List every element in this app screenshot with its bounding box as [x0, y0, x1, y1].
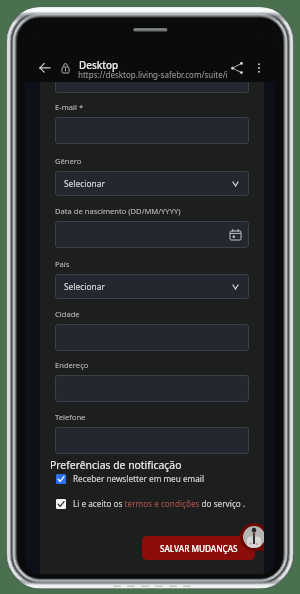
button[interactable]: Receber newsletter em meu email [56, 473, 205, 484]
button[interactable] [55, 375, 249, 402]
staticText: Receber newsletter em meu email [73, 473, 205, 484]
button[interactable]: SALVAR MUDANÇAS [142, 536, 255, 560]
button[interactable]: Selecionar [55, 171, 249, 196]
staticText: Endereço [55, 360, 89, 370]
button[interactable] [55, 427, 249, 454]
staticText: Li e aceito os termos e condições do ser… [73, 498, 246, 509]
staticText: SALVAR MUDANÇAS [160, 543, 238, 554]
staticText: Selecionar [64, 178, 105, 189]
button[interactable]: Share [225, 56, 249, 80]
staticText: Cidade [55, 309, 80, 319]
button[interactable]: More options [247, 56, 271, 80]
button[interactable]: Profile [240, 523, 264, 551]
button[interactable] [55, 221, 249, 248]
staticText: Gênero [55, 156, 82, 166]
staticText: https://desktop.living-safebr.com/suite/… [78, 69, 228, 80]
staticText: País [55, 259, 70, 269]
staticText: Preferências de notificação [50, 458, 182, 472]
staticText: Desktop [79, 58, 119, 71]
button[interactable]: Li e aceito os termos e condições do ser… [56, 498, 246, 509]
button[interactable] [55, 117, 249, 144]
button[interactable]: Back [33, 56, 57, 80]
staticText: E-mail * [55, 102, 84, 112]
staticText: Telefone [55, 412, 86, 422]
button[interactable] [55, 324, 249, 351]
staticText: Selecionar [64, 281, 105, 292]
button[interactable]: Selecionar [55, 274, 249, 299]
staticText: Data de nascimento (DD/MM/YYYY) [55, 206, 181, 216]
